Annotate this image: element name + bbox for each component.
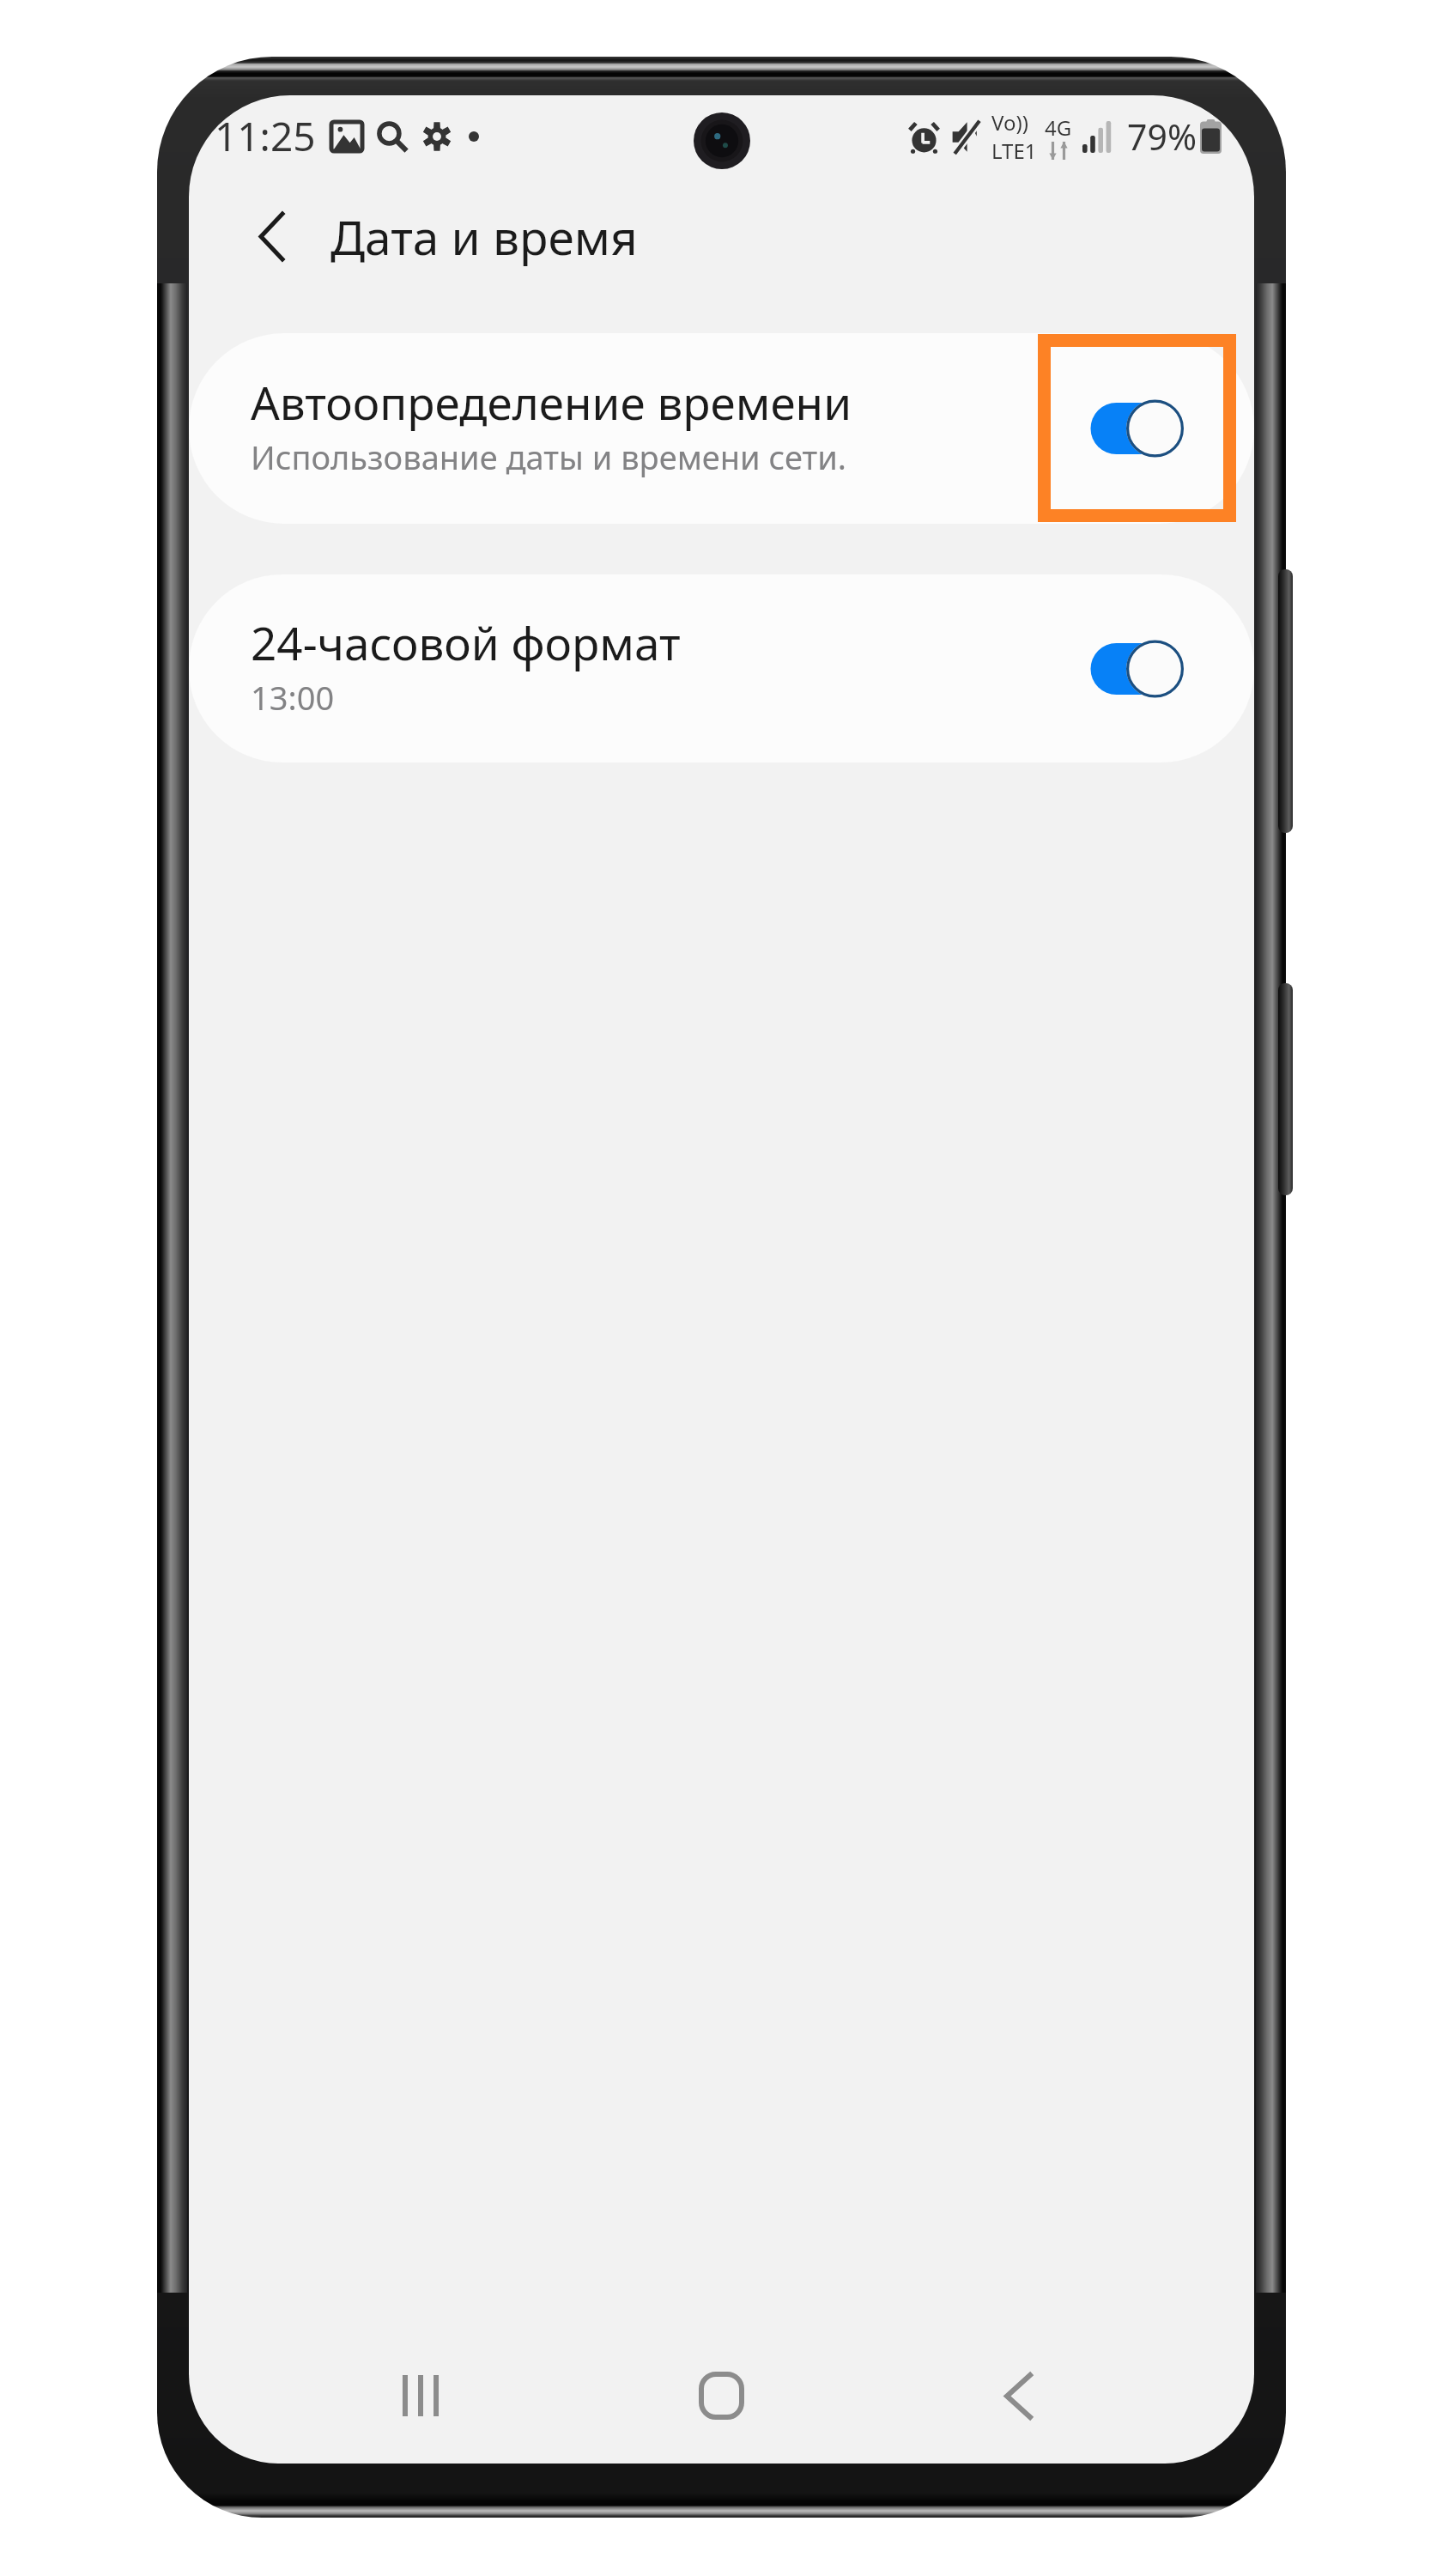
staticText: 79% <box>1127 112 1197 161</box>
staticText: LTE1 <box>991 137 1037 165</box>
button[interactable]: Back <box>230 189 312 283</box>
button[interactable]: Автоопределение времени toggle, on <box>1090 398 1185 459</box>
button[interactable]: Автоопределение времени <box>189 333 1254 524</box>
staticText: 4G <box>1045 113 1072 142</box>
button[interactable]: 24-часовой формат <box>189 574 1254 762</box>
staticText: 13:00 <box>251 675 335 720</box>
staticText: Vo)) <box>991 108 1028 137</box>
button[interactable]: 24-часовой формат toggle, on <box>1090 639 1185 699</box>
staticText: Дата и время <box>330 204 638 269</box>
button[interactable]: Back <box>967 2331 1070 2460</box>
staticText: 11:25 <box>215 109 316 163</box>
button[interactable]: Recents <box>369 2331 472 2460</box>
staticText: Использование даты и времени сети. <box>251 434 846 479</box>
button[interactable]: Home <box>670 2331 773 2460</box>
staticText: 24-часовой формат <box>251 611 681 673</box>
staticText: Автоопределение времени <box>251 371 852 433</box>
